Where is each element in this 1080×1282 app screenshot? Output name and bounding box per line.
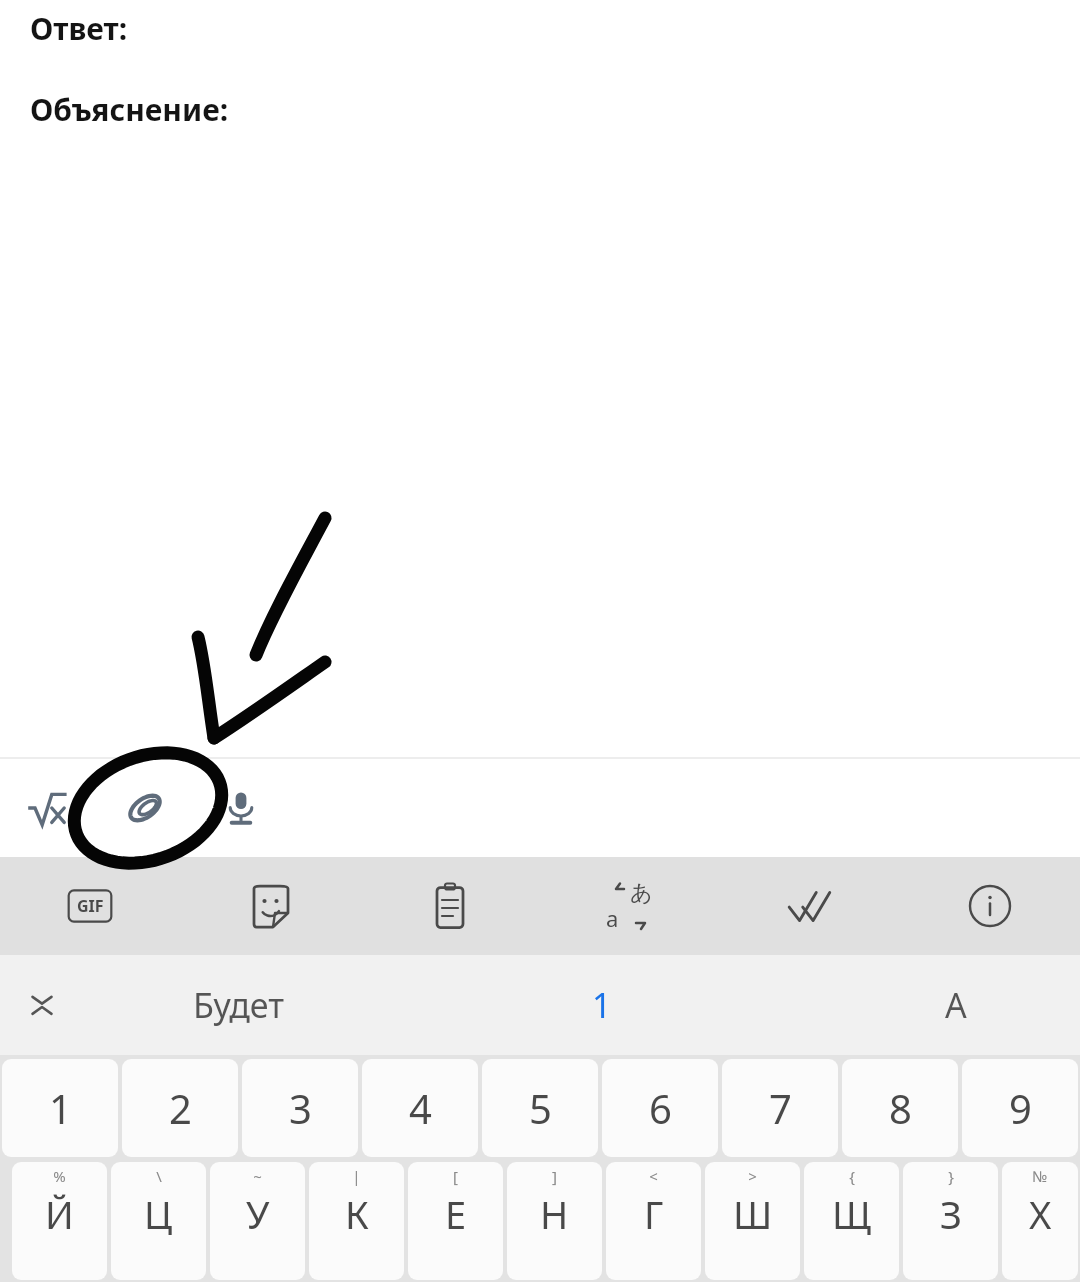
button[interactable]: 9 — [962, 1059, 1078, 1157]
staticText: GIF — [77, 895, 104, 917]
button[interactable]: Proofread — [720, 857, 900, 955]
staticText: } — [948, 1166, 954, 1186]
staticText: ~ — [253, 1166, 262, 1186]
staticText: > — [748, 1166, 757, 1186]
staticText: % — [53, 1166, 66, 1186]
staticText: 9 — [1009, 1081, 1032, 1135]
staticText: Будет — [193, 982, 284, 1028]
staticText: Г — [644, 1188, 664, 1240]
button[interactable]: Translate — [540, 857, 720, 955]
staticText: | — [352, 1166, 361, 1186]
staticText: { — [849, 1166, 855, 1186]
staticText: 7 — [769, 1081, 792, 1135]
button[interactable]: 6 — [602, 1059, 718, 1157]
button[interactable]: { — [804, 1162, 899, 1280]
button[interactable]: Info — [900, 857, 1080, 955]
staticText: 1 — [49, 1081, 72, 1135]
button[interactable]: } — [903, 1162, 998, 1280]
staticText: ] — [552, 1166, 557, 1186]
staticText: № — [1032, 1166, 1048, 1186]
staticText: К — [345, 1188, 369, 1240]
button[interactable]: 2 — [122, 1059, 238, 1157]
staticText: あ — [630, 879, 653, 907]
button[interactable]: 1 — [2, 1059, 118, 1157]
staticText: 3 — [289, 1081, 312, 1135]
staticText: У — [246, 1188, 270, 1240]
staticText: \ — [156, 1166, 162, 1186]
button[interactable]: Будет — [120, 955, 356, 1055]
button[interactable]: Stickers — [180, 857, 360, 955]
button[interactable]: | — [309, 1162, 404, 1280]
button[interactable]: [ — [408, 1162, 503, 1280]
staticText: a — [606, 903, 619, 933]
staticText: Щ — [832, 1188, 871, 1240]
staticText: Объяснение: — [30, 89, 229, 130]
button[interactable]: 8 — [842, 1059, 958, 1157]
staticText: Ш — [733, 1188, 773, 1240]
staticText: 6 — [649, 1081, 672, 1135]
staticText: 5 — [529, 1081, 552, 1135]
button[interactable]: Collapse toolbar — [10, 973, 74, 1037]
button[interactable]: \ — [111, 1162, 206, 1280]
staticText: Ответ: — [30, 8, 128, 49]
button[interactable]: ~ — [210, 1162, 305, 1280]
button[interactable]: № — [1002, 1162, 1078, 1280]
button[interactable]: ] — [507, 1162, 602, 1280]
staticText: Ц — [144, 1188, 173, 1240]
staticText: 1 — [592, 982, 612, 1028]
staticText: Х — [1029, 1188, 1052, 1240]
button[interactable]: А — [838, 955, 1074, 1055]
button[interactable]: Insert formula — [14, 775, 80, 841]
staticText: З — [940, 1188, 962, 1240]
staticText: А — [945, 982, 967, 1028]
staticText: Е — [445, 1188, 467, 1240]
button[interactable]: Attach file — [112, 775, 178, 841]
staticText: Й — [45, 1188, 74, 1240]
button[interactable]: 3 — [242, 1059, 358, 1157]
staticText: 8 — [889, 1081, 912, 1135]
staticText: [ — [453, 1166, 458, 1186]
staticText: 2 — [169, 1081, 192, 1135]
button[interactable]: < — [606, 1162, 701, 1280]
button[interactable]: Clipboard — [360, 857, 540, 955]
button[interactable]: 7 — [722, 1059, 838, 1157]
button[interactable]: % — [12, 1162, 107, 1280]
staticText: Н — [540, 1188, 569, 1240]
staticText: 4 — [409, 1081, 432, 1135]
button[interactable]: GIF — [0, 857, 180, 955]
button[interactable]: 5 — [482, 1059, 598, 1157]
button[interactable]: 4 — [362, 1059, 478, 1157]
staticText: < — [649, 1166, 658, 1186]
button[interactable]: 1 — [484, 955, 720, 1055]
button[interactable]: Voice input — [208, 775, 274, 841]
button[interactable]: > — [705, 1162, 800, 1280]
